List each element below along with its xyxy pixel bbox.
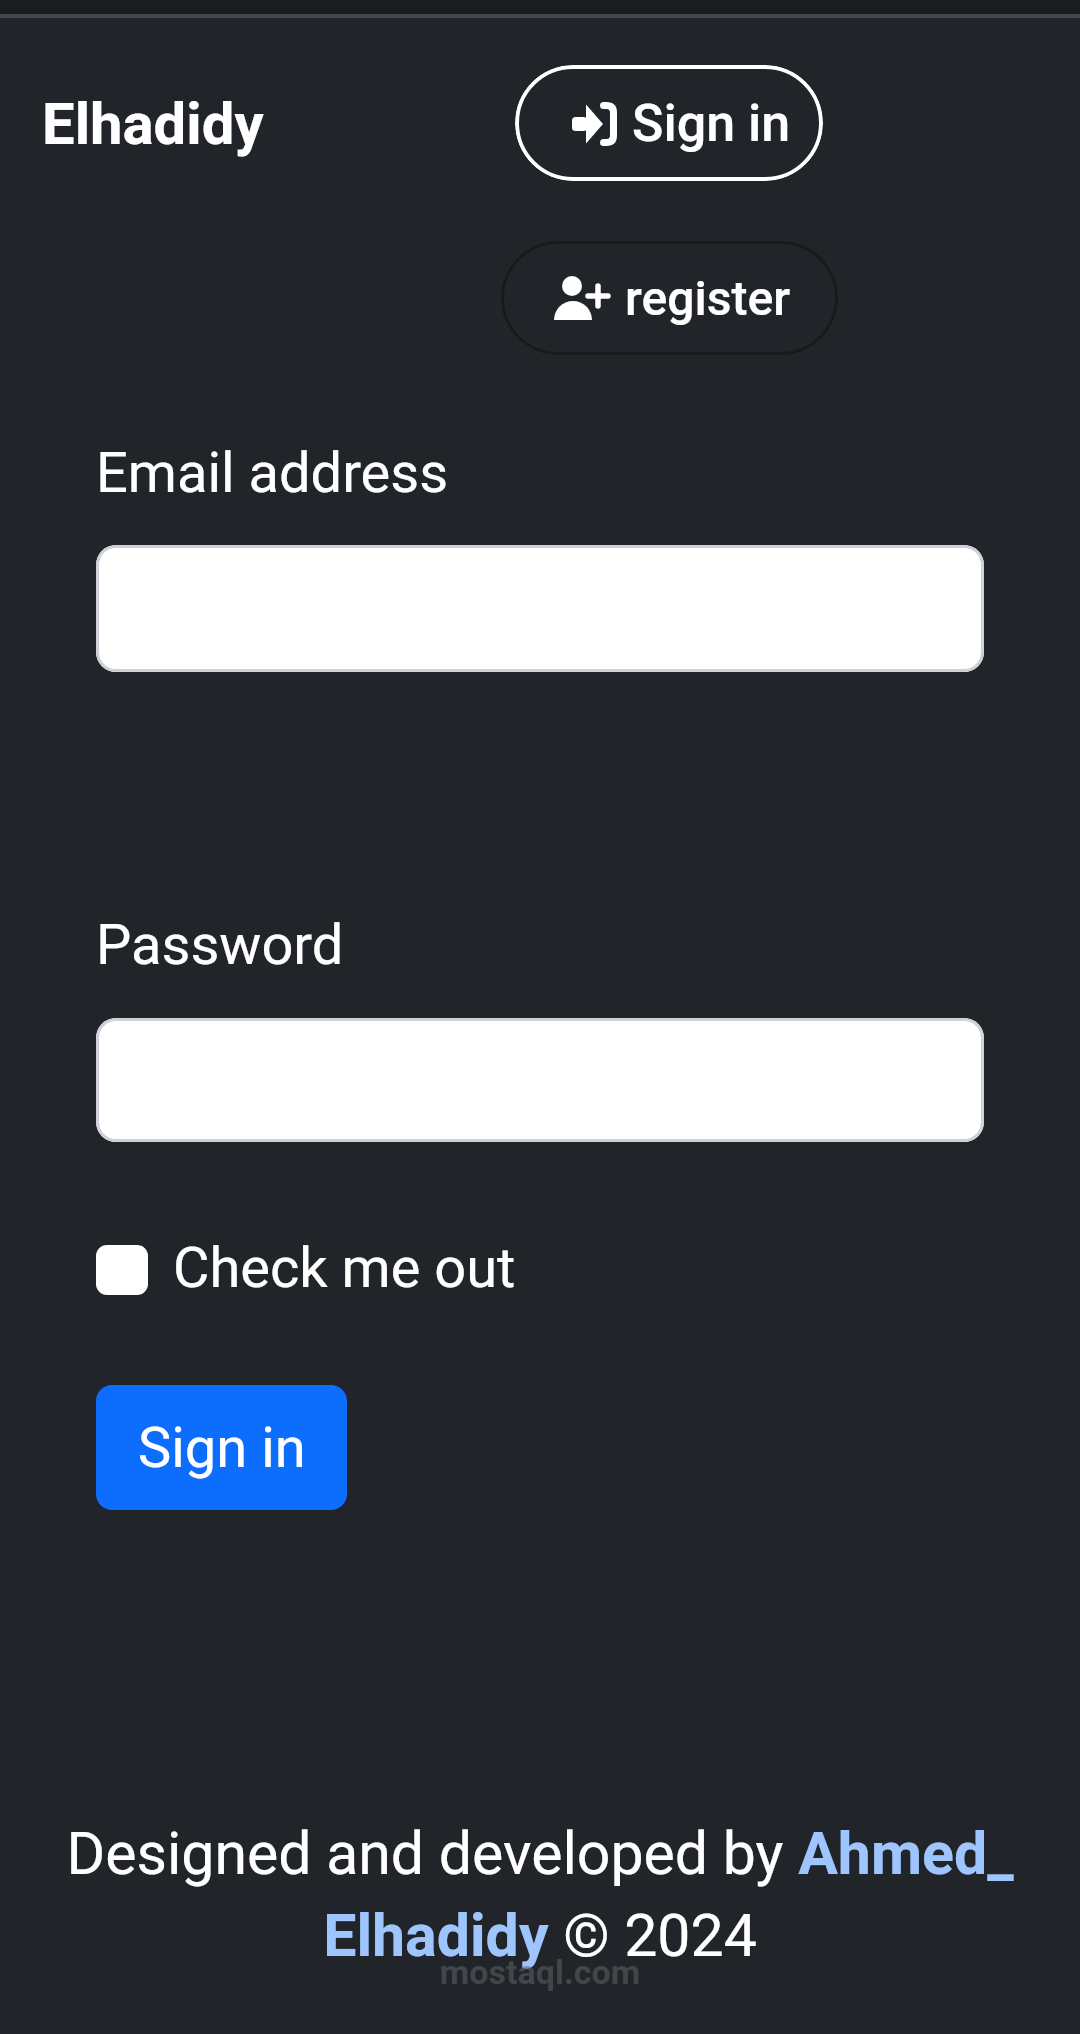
staticText: Sign in xyxy=(138,1415,306,1481)
staticText: Sign in xyxy=(632,93,791,154)
button[interactable]: register xyxy=(501,241,838,355)
button[interactable] xyxy=(96,1245,148,1295)
button[interactable]: Designed and developed by Ahmed_ xyxy=(0,1819,1080,1888)
staticText: Email address xyxy=(96,440,449,506)
button[interactable]: Check me out xyxy=(173,1235,516,1301)
staticText: Elhadidy © 2024 xyxy=(0,1901,1080,1970)
staticText: mostaql.com xyxy=(0,1952,1080,1992)
staticText: Elhadidy xyxy=(42,90,264,158)
button[interactable] xyxy=(96,545,984,672)
button[interactable]: Sign in xyxy=(96,1385,347,1510)
button[interactable]: Sign in xyxy=(515,65,823,181)
staticText: Password xyxy=(96,912,344,978)
button[interactable] xyxy=(96,1018,984,1142)
staticText: register xyxy=(625,270,791,326)
